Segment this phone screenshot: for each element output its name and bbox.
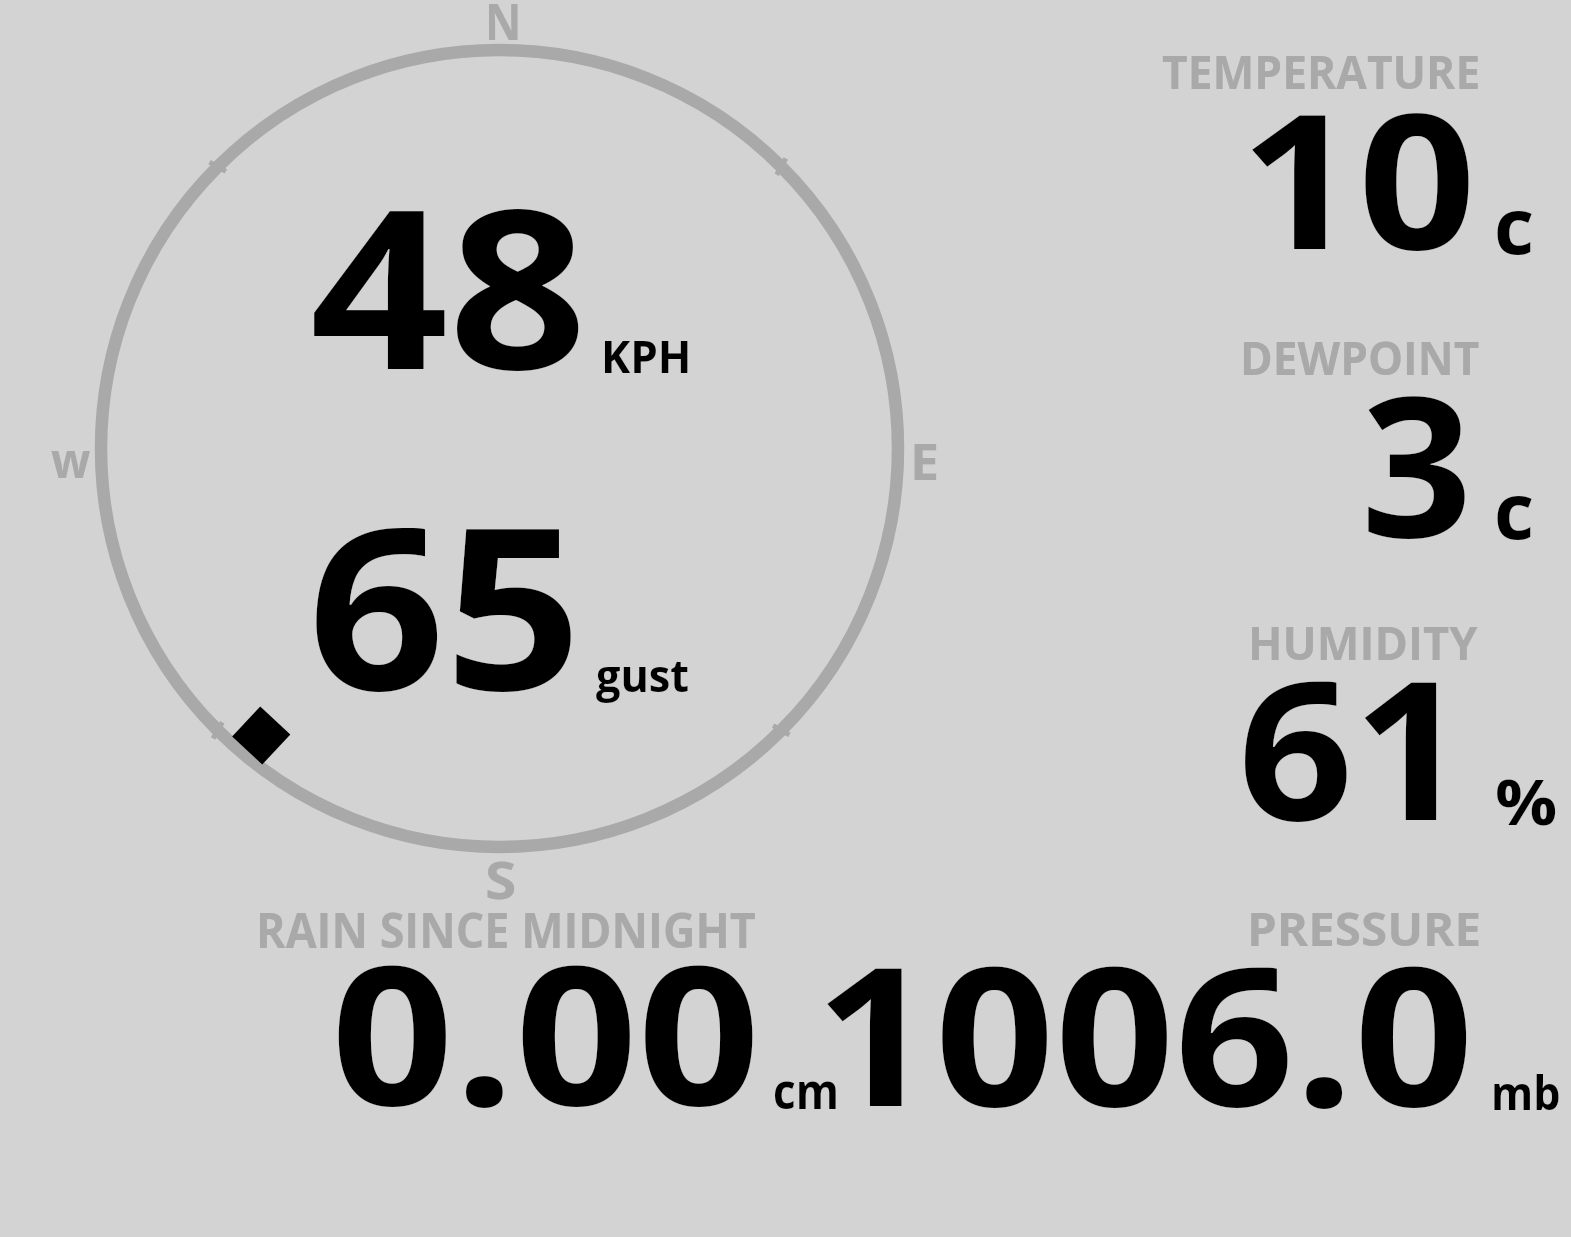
staticText: gust <box>596 643 690 705</box>
staticText: E <box>910 427 939 495</box>
button[interactable]: HUMIDITY <box>1100 611 1571 851</box>
staticText: 10 <box>1240 49 1477 304</box>
staticText: 65 <box>308 450 582 756</box>
staticText: TEMPERATURE <box>1162 39 1481 102</box>
button[interactable]: Wind direction dial, south-west <box>77 26 922 871</box>
staticText: w <box>51 426 90 493</box>
staticText: 61 <box>1238 615 1469 876</box>
staticText: c <box>1494 456 1535 562</box>
staticText: KPH <box>601 325 692 386</box>
button[interactable]: DEWPOINT <box>1100 326 1571 566</box>
staticText: RAIN SINCE MIDNIGHT <box>256 897 756 962</box>
staticText: PRESSURE <box>1247 896 1481 959</box>
staticText: DEWPOINT <box>1240 325 1480 388</box>
staticText: HUMIDITY <box>1248 610 1478 673</box>
staticText: S <box>485 844 517 914</box>
staticText: 0.00 <box>331 900 760 1161</box>
button[interactable]: TEMPERATURE <box>1100 40 1571 280</box>
staticText: N <box>485 0 522 55</box>
button[interactable]: RAIN SINCE MIDNIGHT <box>240 897 820 1127</box>
staticText: 3 <box>1361 329 1473 594</box>
staticText: mb <box>1491 1060 1561 1124</box>
staticText: % <box>1495 759 1557 844</box>
staticText: cm <box>773 1058 840 1123</box>
button[interactable]: 65 <box>300 510 700 715</box>
staticText: 48 <box>310 134 587 434</box>
staticText: c <box>1494 171 1535 277</box>
button[interactable]: 48 <box>300 190 700 390</box>
button[interactable]: PRESSURE <box>820 897 1571 1127</box>
staticText: 1006.0 <box>815 901 1475 1162</box>
